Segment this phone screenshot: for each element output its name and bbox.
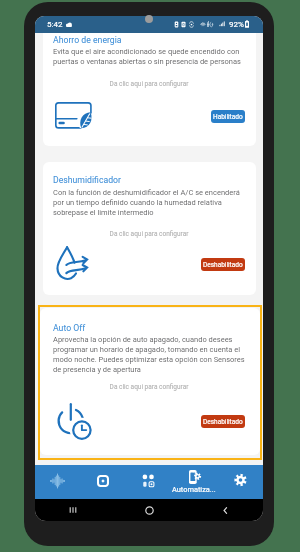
staticText: Evita que el aire acondicionado se quede… xyxy=(53,47,243,66)
button[interactable]: Devices xyxy=(80,465,125,499)
button[interactable] xyxy=(43,162,256,295)
button[interactable]: Deshabilitado xyxy=(201,415,245,428)
button[interactable] xyxy=(40,308,260,455)
staticText: Da clic aqui para configurar xyxy=(35,383,263,391)
staticText: 92% xyxy=(229,20,244,29)
button[interactable] xyxy=(43,25,256,146)
staticText: Da clic aqui para configurar xyxy=(35,230,263,238)
staticText: Deshumidificador xyxy=(53,175,121,185)
staticText: Con la función de deshumidificador el A/… xyxy=(53,188,243,217)
staticText: Automatiza... xyxy=(172,485,216,494)
button[interactable]: Automatiza... xyxy=(171,465,217,499)
staticText: Habilitado xyxy=(213,113,243,121)
staticText: Ahorro de energia xyxy=(53,35,122,45)
staticText: Deshabilitado xyxy=(203,261,243,269)
button[interactable]: Habilitado xyxy=(211,110,245,123)
button[interactable]: Deshabilitado xyxy=(201,258,245,271)
button[interactable]: Settings xyxy=(217,465,263,499)
staticText: 5:42 xyxy=(47,20,63,29)
staticText: Deshabilitado xyxy=(203,418,243,426)
staticText: Auto Off xyxy=(53,323,86,333)
staticText: Aprovecha la opción de auto apagado, cua… xyxy=(53,335,248,374)
staticText: Da clic aqui para configurar xyxy=(35,80,263,88)
button[interactable]: Voice assistant xyxy=(35,465,80,499)
button[interactable]: Scenes xyxy=(125,465,171,499)
